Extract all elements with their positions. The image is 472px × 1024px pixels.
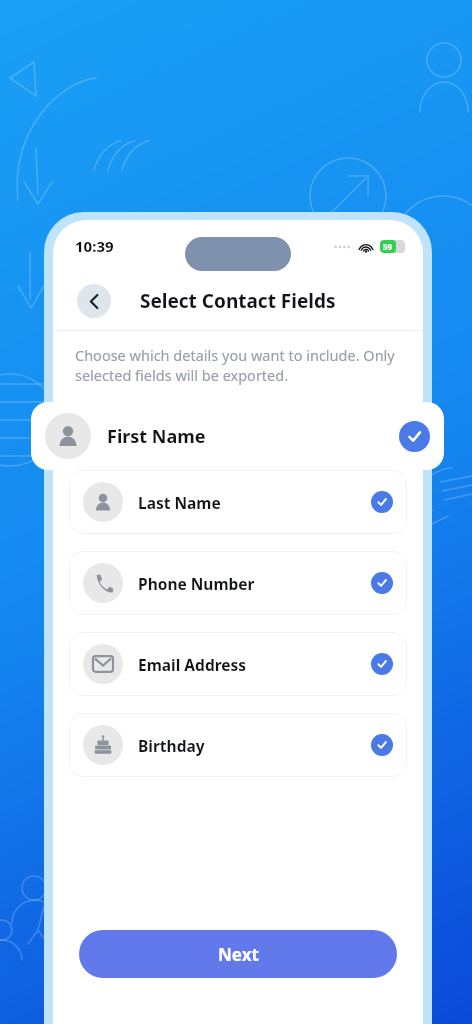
- staticText: 59: [383, 241, 393, 252]
- staticText: Last Name: [138, 492, 221, 513]
- staticText: Next: [218, 943, 259, 966]
- button[interactable]: Phone Number: [69, 551, 407, 615]
- button[interactable]: Birthday: [69, 713, 407, 777]
- button[interactable]: Next: [79, 930, 397, 978]
- staticText: Choose which details you want to include…: [75, 345, 401, 386]
- staticText: Select Contact Fields: [140, 288, 336, 314]
- staticText: Birthday: [138, 735, 205, 756]
- staticText: First Name: [107, 424, 206, 449]
- button[interactable]: Email Address: [69, 632, 407, 696]
- staticText: 10:39: [75, 236, 114, 256]
- staticText: Phone Number: [138, 573, 255, 594]
- button[interactable]: Last Name: [69, 470, 407, 534]
- staticText: Email Address: [138, 654, 247, 675]
- button[interactable]: First Name: [31, 402, 444, 470]
- button[interactable]: Back: [77, 284, 111, 318]
